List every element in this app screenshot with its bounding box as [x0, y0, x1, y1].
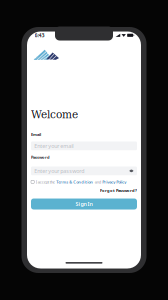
- staticText: Email: [31, 132, 41, 137]
- staticText: Enter your email: [34, 142, 73, 149]
- button[interactable]: Forgot Password?: [100, 188, 137, 193]
- staticText: Password: [31, 155, 50, 160]
- staticText: Privacy Policy: [102, 179, 126, 184]
- staticText: Enter your password: [34, 167, 84, 174]
- staticText: Sign In: [75, 200, 92, 208]
- staticText: Welcome: [31, 108, 78, 121]
- staticText: 6:43: [35, 32, 45, 39]
- button[interactable]: Privacy Policy: [102, 179, 126, 184]
- staticText: and: [95, 179, 101, 184]
- staticText: Forgot Password?: [100, 188, 137, 193]
- staticText: Terms & Condition: [56, 179, 93, 184]
- staticText: I accept the: [36, 179, 55, 184]
- button[interactable]: Terms & Condition: [56, 179, 93, 184]
- button[interactable]: Enter your password: [31, 166, 137, 175]
- button[interactable]: Enter your email: [31, 141, 137, 150]
- button[interactable]: Accept terms and conditions: [31, 180, 34, 183]
- button[interactable]: Sign In: [31, 198, 137, 209]
